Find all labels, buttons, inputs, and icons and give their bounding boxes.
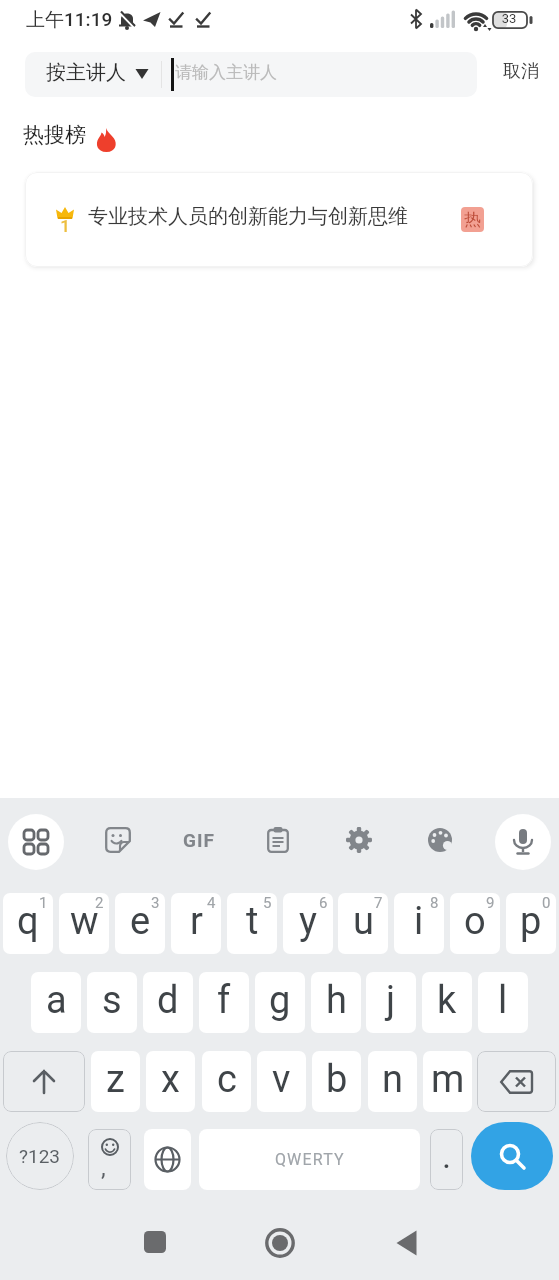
staticText: k <box>437 978 457 1023</box>
button[interactable] <box>144 1129 191 1190</box>
staticText: g <box>269 978 291 1023</box>
button[interactable]: h <box>311 972 361 1033</box>
button[interactable]: k <box>422 972 472 1033</box>
staticText: , <box>101 1154 106 1182</box>
staticText: h <box>326 978 347 1023</box>
button[interactable]: z <box>91 1051 140 1112</box>
button[interactable]: p <box>506 893 556 954</box>
button[interactable] <box>3 1051 85 1112</box>
button[interactable] <box>8 814 64 870</box>
button[interactable]: a <box>31 972 81 1033</box>
staticText: 专业技术人员的创新能力与创新思维 <box>88 204 408 229</box>
staticText: 按主讲人 <box>46 60 126 85</box>
button[interactable]: u <box>338 893 388 954</box>
staticText: GIF <box>183 829 215 851</box>
button[interactable]: e <box>115 893 165 954</box>
staticText: j <box>386 978 396 1023</box>
staticText: w <box>70 899 99 944</box>
button[interactable] <box>250 1212 310 1274</box>
button[interactable]: y <box>283 893 333 954</box>
button[interactable]: o <box>450 893 500 954</box>
button[interactable]: q <box>3 893 53 954</box>
staticText: ?123 <box>19 1145 61 1167</box>
staticText: t <box>246 899 259 944</box>
staticText: 6 <box>319 894 328 912</box>
staticText: r <box>190 899 203 944</box>
staticText: l <box>498 978 508 1023</box>
staticText: y <box>299 899 317 944</box>
button[interactable]: v <box>257 1051 306 1112</box>
button[interactable]: m <box>423 1051 472 1112</box>
staticText: n <box>382 1057 403 1102</box>
staticText: a <box>46 978 67 1023</box>
staticText: QWERTY <box>275 1150 345 1169</box>
staticText: 1 <box>39 894 48 912</box>
staticText: 请输入主讲人 <box>175 62 277 83</box>
staticText: 5 <box>263 894 272 912</box>
staticText: p <box>520 899 542 944</box>
staticText: 热 <box>464 209 481 230</box>
button[interactable]: n <box>368 1051 417 1112</box>
staticText: d <box>157 978 179 1023</box>
button[interactable]: GIF <box>175 816 223 864</box>
button[interactable]: QWERTY <box>199 1129 420 1190</box>
button[interactable] <box>254 816 302 864</box>
button[interactable]: f <box>199 972 249 1033</box>
staticText: 9 <box>486 894 495 912</box>
button[interactable]: t <box>227 893 277 954</box>
button[interactable]: 取消 <box>489 52 559 97</box>
button[interactable]: c <box>202 1051 251 1112</box>
button[interactable]: x <box>146 1051 195 1112</box>
button[interactable]: . <box>430 1129 463 1190</box>
staticText: 取消 <box>503 60 539 83</box>
staticText: i <box>414 899 424 944</box>
staticText: 7 <box>374 894 383 912</box>
button[interactable]: 按主讲人 <box>25 52 477 97</box>
staticText: 33 <box>497 11 521 26</box>
staticText: . <box>443 1146 450 1174</box>
button[interactable] <box>471 1122 553 1190</box>
button[interactable]: ?123 <box>6 1122 74 1190</box>
staticText: u <box>353 899 374 944</box>
button[interactable]: 1 <box>25 172 533 267</box>
staticText: q <box>17 899 39 944</box>
staticText: c <box>217 1057 237 1102</box>
staticText: o <box>464 899 486 944</box>
staticText: 0 <box>542 894 551 912</box>
button[interactable]: r <box>171 893 221 954</box>
button[interactable] <box>120 1212 190 1272</box>
button[interactable]: b <box>312 1051 361 1112</box>
staticText: m <box>431 1057 465 1102</box>
staticText: e <box>130 899 151 944</box>
staticText: 1 <box>56 216 74 236</box>
staticText: 4 <box>207 894 216 912</box>
button[interactable] <box>495 814 551 870</box>
button[interactable]: , <box>88 1129 131 1190</box>
button[interactable]: s <box>87 972 137 1033</box>
button[interactable]: d <box>143 972 193 1033</box>
button[interactable] <box>376 1212 436 1274</box>
button[interactable] <box>94 816 142 864</box>
button[interactable]: l <box>478 972 528 1033</box>
staticText: 2 <box>95 894 104 912</box>
staticText: f <box>217 978 231 1023</box>
button[interactable]: w <box>59 893 109 954</box>
button[interactable] <box>477 1051 556 1112</box>
staticText: x <box>161 1057 180 1102</box>
staticText: 3 <box>151 894 160 912</box>
staticText: z <box>106 1057 125 1102</box>
staticText: 上午11:19 <box>26 8 113 32</box>
button[interactable]: j <box>366 972 416 1033</box>
button[interactable] <box>416 816 464 864</box>
staticText: v <box>272 1057 291 1102</box>
staticText: 8 <box>430 894 439 912</box>
staticText: s <box>102 978 122 1023</box>
button[interactable]: g <box>255 972 305 1033</box>
staticText: 热搜榜 <box>23 122 86 148</box>
staticText: b <box>326 1057 348 1102</box>
button[interactable]: i <box>394 893 444 954</box>
button[interactable] <box>335 816 383 864</box>
